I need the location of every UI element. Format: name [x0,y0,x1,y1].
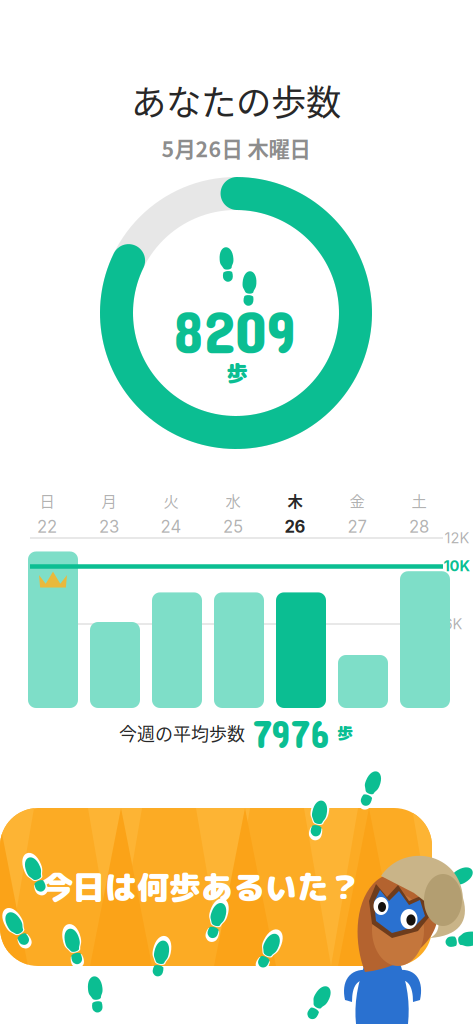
staticText: 8209 [175,296,298,367]
staticText: 歩 [337,722,353,744]
staticText: 8209 [173,295,296,365]
staticText: 金 [349,489,364,511]
staticText: 土 [411,489,426,511]
staticText: 28 [409,516,429,537]
staticText: 12K [444,529,469,547]
staticText: 25 [223,516,243,537]
staticText: 26 [284,516,305,537]
staticText: 月 [101,489,116,511]
staticText: 10K [443,557,470,575]
staticText: 24 [160,516,181,537]
staticText: 27 [347,516,366,537]
staticText: あなたの歩数 [131,74,341,126]
staticText: 日 [39,489,54,511]
staticText: 歩 [226,358,247,388]
staticText: 水 [225,489,240,511]
button[interactable]: 今日は何歩あるいた？ [0,808,432,966]
staticText: 7976 [253,710,329,756]
staticText: 22 [37,516,57,537]
staticText: 木 [287,489,302,511]
staticText: 5月26日 木曜日 [161,133,310,163]
staticText: 今週の平均歩数 [119,720,245,746]
staticText: 23 [99,516,119,537]
staticText: 火 [163,489,178,511]
staticText: 6K [443,615,462,633]
staticText: 今日は何歩あるいた？ [41,865,361,909]
